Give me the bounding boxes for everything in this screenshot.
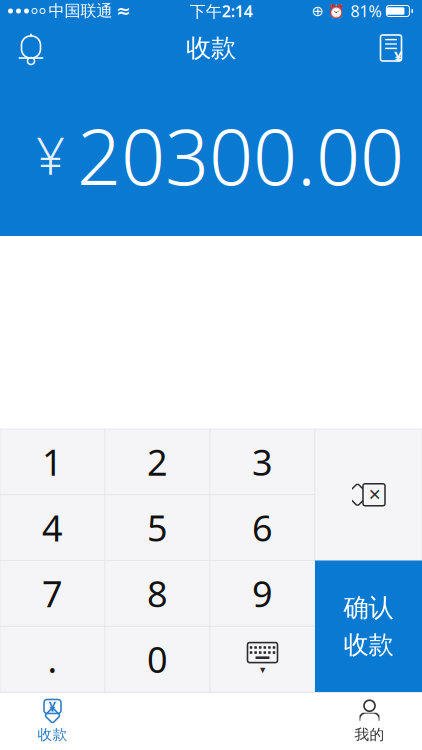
staticText: 我的 <box>354 725 384 743</box>
staticText: 收款 <box>186 32 236 63</box>
staticText: ⊕ <box>311 3 323 19</box>
staticText: 确认 <box>343 592 393 623</box>
staticText: 收款 <box>343 629 393 660</box>
staticText: ▾ <box>260 664 265 676</box>
button[interactable]: 通知 <box>8 25 54 71</box>
button[interactable]: 收起键盘 <box>210 626 315 692</box>
staticText: 5 <box>147 504 168 551</box>
button[interactable]: 7 <box>0 560 105 626</box>
button[interactable]: 确认 <box>315 560 422 692</box>
staticText: ≈ <box>116 1 131 21</box>
staticText: . <box>47 635 57 683</box>
staticText: 7 <box>42 569 63 617</box>
button[interactable]: 9 <box>210 560 315 626</box>
staticText: 6 <box>252 504 273 551</box>
button[interactable]: 3 <box>210 429 315 495</box>
button[interactable]: 5 <box>105 495 210 561</box>
staticText: ¥ <box>394 46 402 66</box>
button[interactable]: 8 <box>105 560 210 626</box>
staticText: ¥ <box>36 121 65 189</box>
button[interactable]: 0 <box>105 626 210 692</box>
staticText: 20300.00 <box>77 104 404 206</box>
staticText: ✕ <box>368 486 381 504</box>
button[interactable]: ¥ <box>0 692 105 750</box>
staticText: 9 <box>252 569 273 617</box>
staticText: 1 <box>42 438 63 486</box>
button[interactable]: 6 <box>210 495 315 561</box>
staticText: 81% <box>350 0 381 22</box>
staticText: 4 <box>42 504 63 551</box>
button[interactable]: 删除 <box>315 429 422 560</box>
staticText: 中国联通 <box>48 1 112 21</box>
staticText: 0 <box>147 635 168 683</box>
staticText: ¥ <box>48 698 56 715</box>
button[interactable]: 账单 <box>368 25 414 71</box>
button[interactable]: 1 <box>0 429 105 495</box>
staticText: 收款 <box>37 725 67 743</box>
button[interactable]: 2 <box>105 429 210 495</box>
button[interactable]: . <box>0 626 105 692</box>
staticText: ⏰ <box>328 3 345 19</box>
button[interactable]: 我的 <box>317 692 422 750</box>
staticText: 2 <box>147 438 168 486</box>
staticText: 8 <box>147 569 168 617</box>
button[interactable]: 4 <box>0 495 105 561</box>
staticText: 下午2:14 <box>190 0 253 22</box>
staticText: 3 <box>252 438 273 486</box>
